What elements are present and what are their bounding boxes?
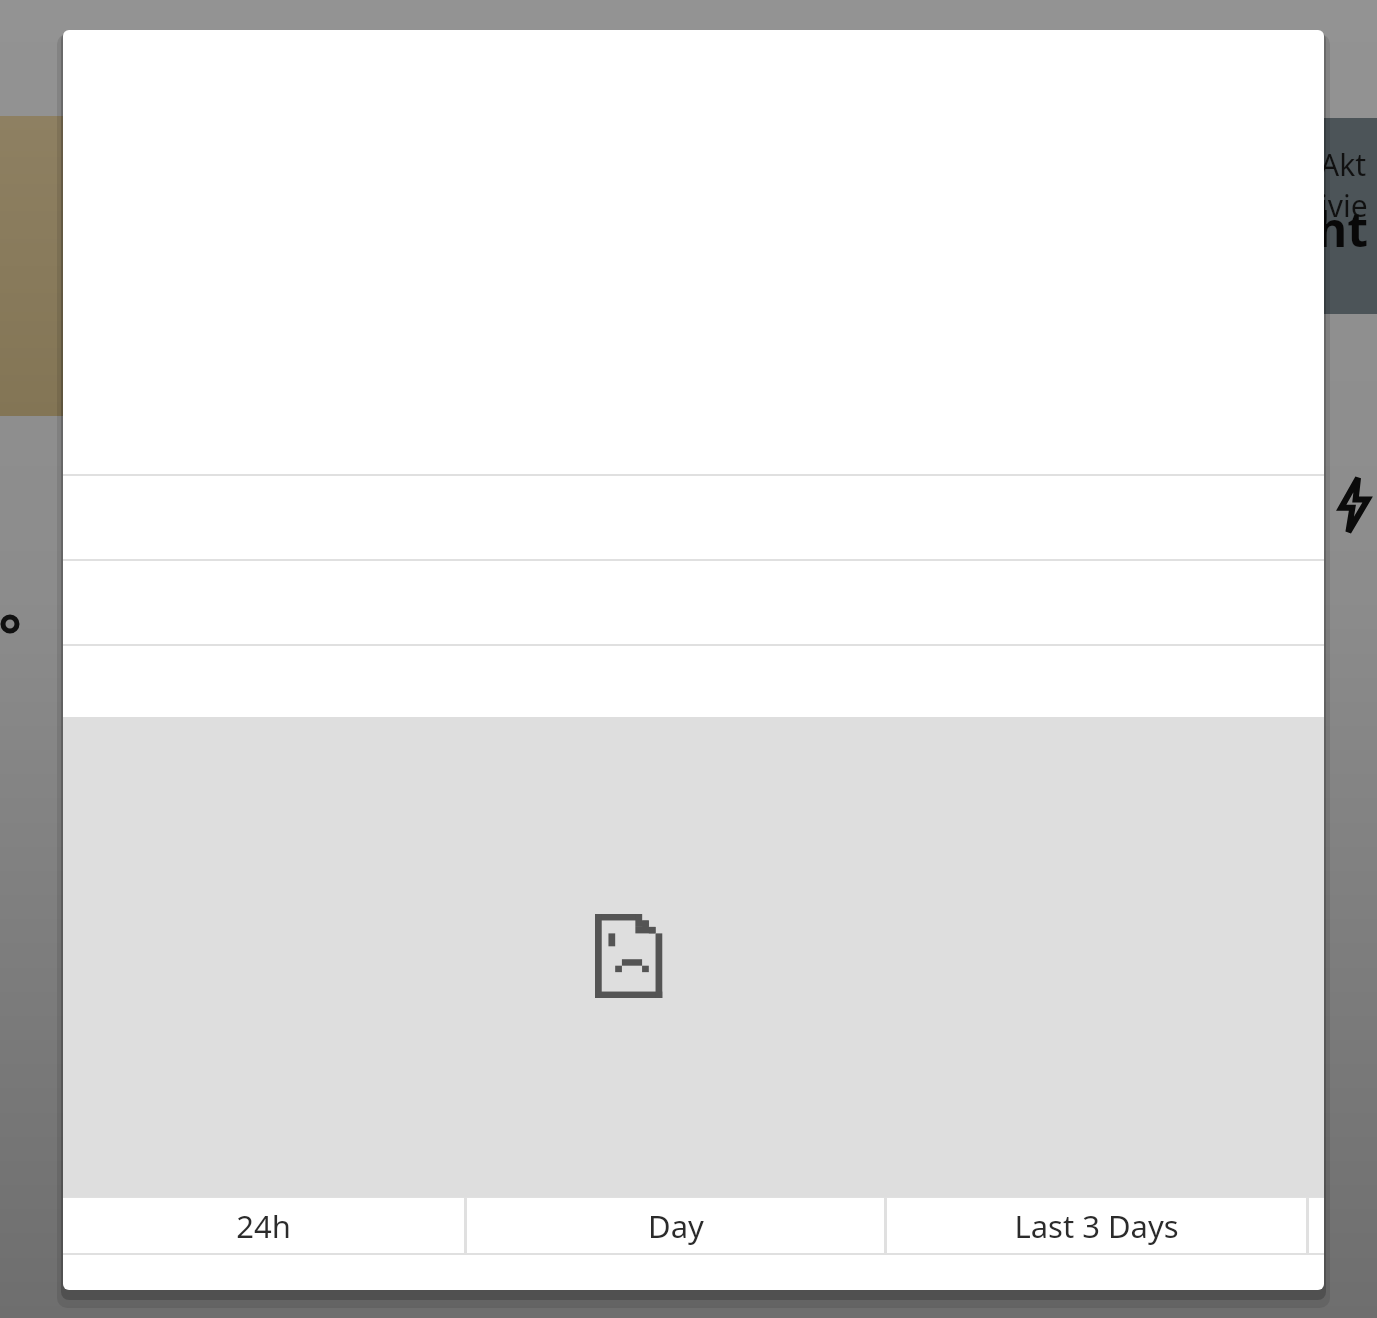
button[interactable] [1309, 1197, 1324, 1255]
staticText: 24h [236, 1205, 291, 1247]
staticText: Aktivie [1320, 144, 1373, 226]
staticText: Day [648, 1205, 704, 1247]
button[interactable]: Day [467, 1197, 884, 1255]
button[interactable]: Last 3 Days [887, 1197, 1306, 1255]
staticText: ht [1316, 196, 1369, 261]
button[interactable]: 24h [63, 1197, 464, 1255]
staticText: Last 3 Days [1014, 1205, 1179, 1247]
